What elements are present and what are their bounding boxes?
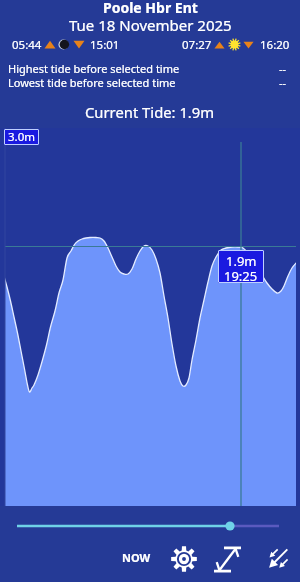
- button[interactable]: Zoom out: [262, 544, 292, 574]
- button[interactable]: Time slider: [0, 506, 300, 546]
- staticText: 16:20: [260, 37, 290, 53]
- staticText: 15:01: [90, 37, 120, 53]
- staticText: Current Tide: 1.9m: [85, 102, 215, 122]
- staticText: 3.0m: [8, 129, 35, 145]
- staticText: --: [279, 75, 287, 90]
- staticText: Highest tide before selected time: [8, 61, 180, 76]
- staticText: Lowest tide before selected time: [8, 75, 176, 90]
- staticText: 07:27: [182, 37, 212, 53]
- button[interactable]: Settings: [169, 544, 199, 574]
- staticText: 19:25: [224, 267, 258, 282]
- staticText: Tue 18 November 2025: [69, 15, 232, 35]
- button[interactable]: NOW: [116, 544, 156, 570]
- staticText: --: [279, 61, 287, 76]
- staticText: 1.9m: [226, 252, 257, 267]
- staticText: 05:44: [12, 37, 42, 53]
- staticText: NOW: [122, 550, 151, 565]
- staticText: Poole Hbr Ent: [103, 0, 198, 16]
- button[interactable]: Vertical zoom: [212, 544, 242, 574]
